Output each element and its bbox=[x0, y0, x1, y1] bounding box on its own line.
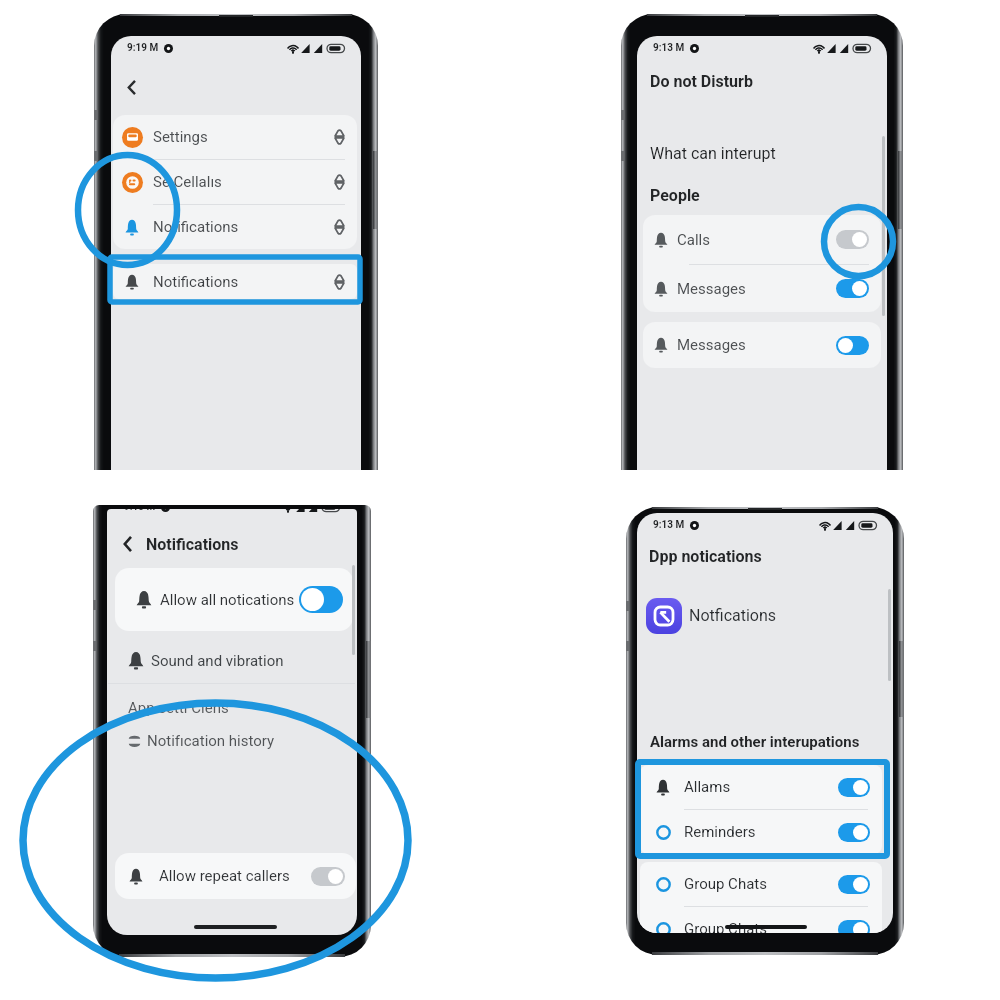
button[interactable]: Allow all notications bbox=[115, 568, 353, 631]
button[interactable]: Sound and vibration bbox=[107, 639, 357, 682]
staticText: Allow repeat callers bbox=[159, 867, 290, 885]
button[interactable]: Switch on bbox=[838, 920, 870, 933]
button[interactable]: Switch on bbox=[838, 875, 870, 894]
button[interactable]: Back bbox=[116, 533, 140, 555]
staticText: Sound and vibration bbox=[151, 652, 284, 670]
button[interactable]: Reminders bbox=[640, 810, 882, 854]
staticText: Se Cellalıs bbox=[153, 173, 222, 191]
button[interactable]: Allow repeat callers bbox=[115, 853, 356, 899]
button[interactable]: Calls bbox=[643, 215, 881, 264]
staticText: 9:13 M bbox=[124, 509, 156, 513]
button[interactable]: Notifications bbox=[113, 205, 357, 249]
staticText: Settings bbox=[153, 128, 208, 146]
button[interactable]: Notifıcation history bbox=[107, 724, 357, 758]
staticText: Reminders bbox=[684, 823, 756, 841]
staticText: Group Chats bbox=[684, 920, 767, 933]
button[interactable]: Back bbox=[121, 76, 143, 98]
button[interactable]: Messages bbox=[643, 322, 881, 368]
staticText: Notifications bbox=[146, 535, 239, 554]
staticText: Allams bbox=[684, 778, 731, 796]
staticText: People bbox=[650, 186, 700, 205]
staticText: Group Chats bbox=[684, 875, 767, 893]
staticText: Do not Disturb bbox=[650, 72, 753, 91]
button[interactable]: Switch on bbox=[838, 778, 870, 797]
staticText: App setti Cıens bbox=[128, 699, 229, 717]
staticText: Messages bbox=[677, 336, 746, 354]
button[interactable]: Se Cellalıs bbox=[113, 160, 357, 204]
staticText: Notfications bbox=[689, 606, 777, 625]
button[interactable]: Switch on bbox=[299, 586, 343, 613]
staticText: Notifıcation history bbox=[147, 732, 275, 750]
staticText: Notifications bbox=[153, 218, 239, 236]
staticText: 9:13 M bbox=[653, 519, 685, 531]
button[interactable]: Messages bbox=[643, 265, 881, 312]
staticText: 9:13 M bbox=[653, 42, 685, 54]
button[interactable]: Switch on bbox=[836, 336, 869, 355]
button[interactable]: Settings bbox=[113, 115, 357, 159]
staticText: Allow all notications bbox=[160, 591, 295, 609]
button[interactable]: Notifications bbox=[113, 264, 357, 299]
staticText: Alarms and other interupations bbox=[650, 733, 860, 751]
staticText: Calls bbox=[677, 231, 710, 249]
staticText: Messages bbox=[677, 280, 746, 298]
staticText: What can interupt bbox=[650, 144, 776, 163]
button[interactable]: Group Chats bbox=[640, 862, 882, 906]
button[interactable]: Group Chats bbox=[640, 907, 882, 933]
button[interactable]: Switch on bbox=[836, 279, 869, 298]
button[interactable]: Notifications app bbox=[646, 598, 682, 634]
staticText: Dpp notications bbox=[649, 547, 762, 566]
button[interactable]: Allams bbox=[640, 765, 882, 809]
button[interactable]: Switch off bbox=[836, 230, 869, 249]
staticText: Notifications bbox=[153, 273, 239, 291]
staticText: 9:19 M bbox=[127, 42, 159, 54]
button[interactable]: Switch on bbox=[838, 823, 870, 842]
button[interactable]: Switch off bbox=[311, 867, 345, 886]
